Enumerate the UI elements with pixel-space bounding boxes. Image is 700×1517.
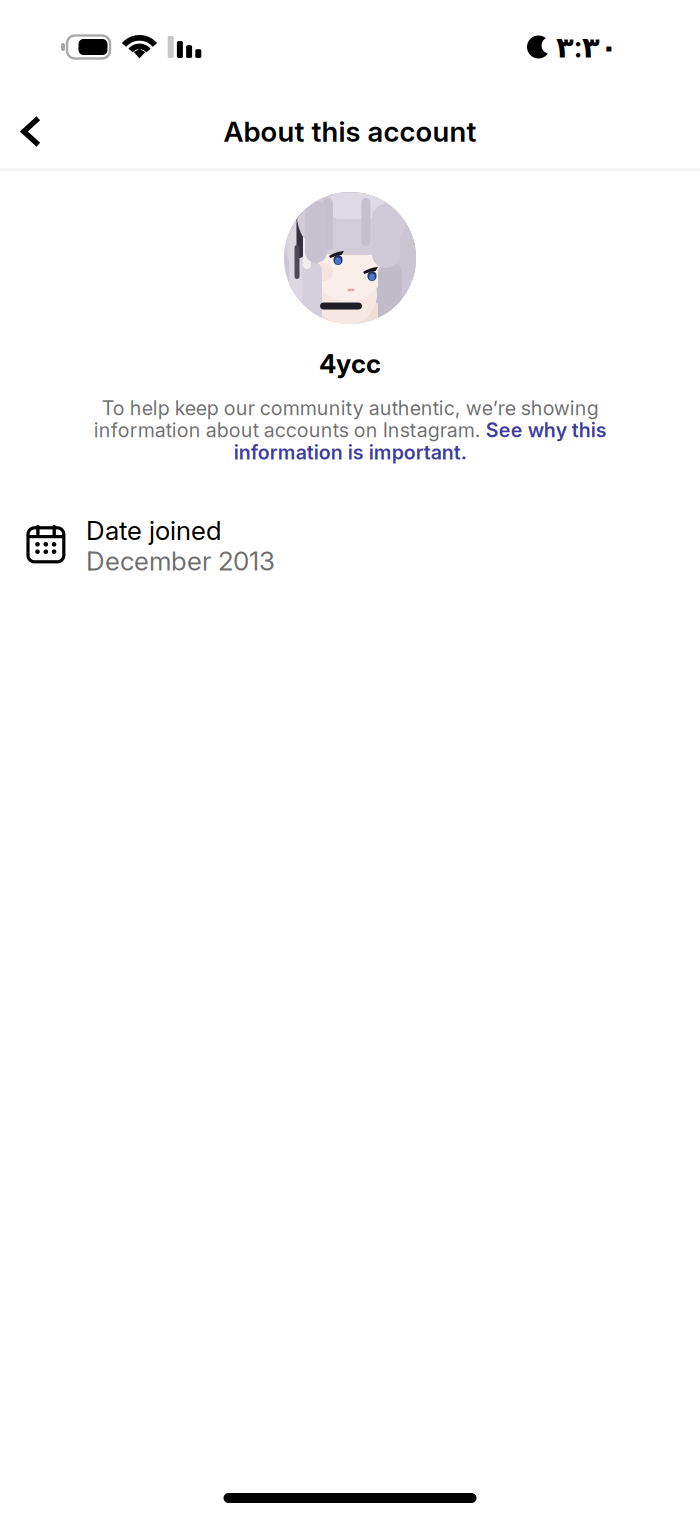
staticText: Date joined (86, 515, 222, 546)
button[interactable]: Back (0, 100, 67, 162)
staticText: 4ycc (319, 348, 381, 379)
staticText: To help keep our community authentic, we… (93, 396, 606, 464)
button[interactable]: Date joined (0, 515, 700, 577)
staticText: ٣:٣٠ (556, 29, 618, 65)
staticText: December 2013 (86, 545, 275, 577)
staticText: About this account (223, 115, 476, 148)
